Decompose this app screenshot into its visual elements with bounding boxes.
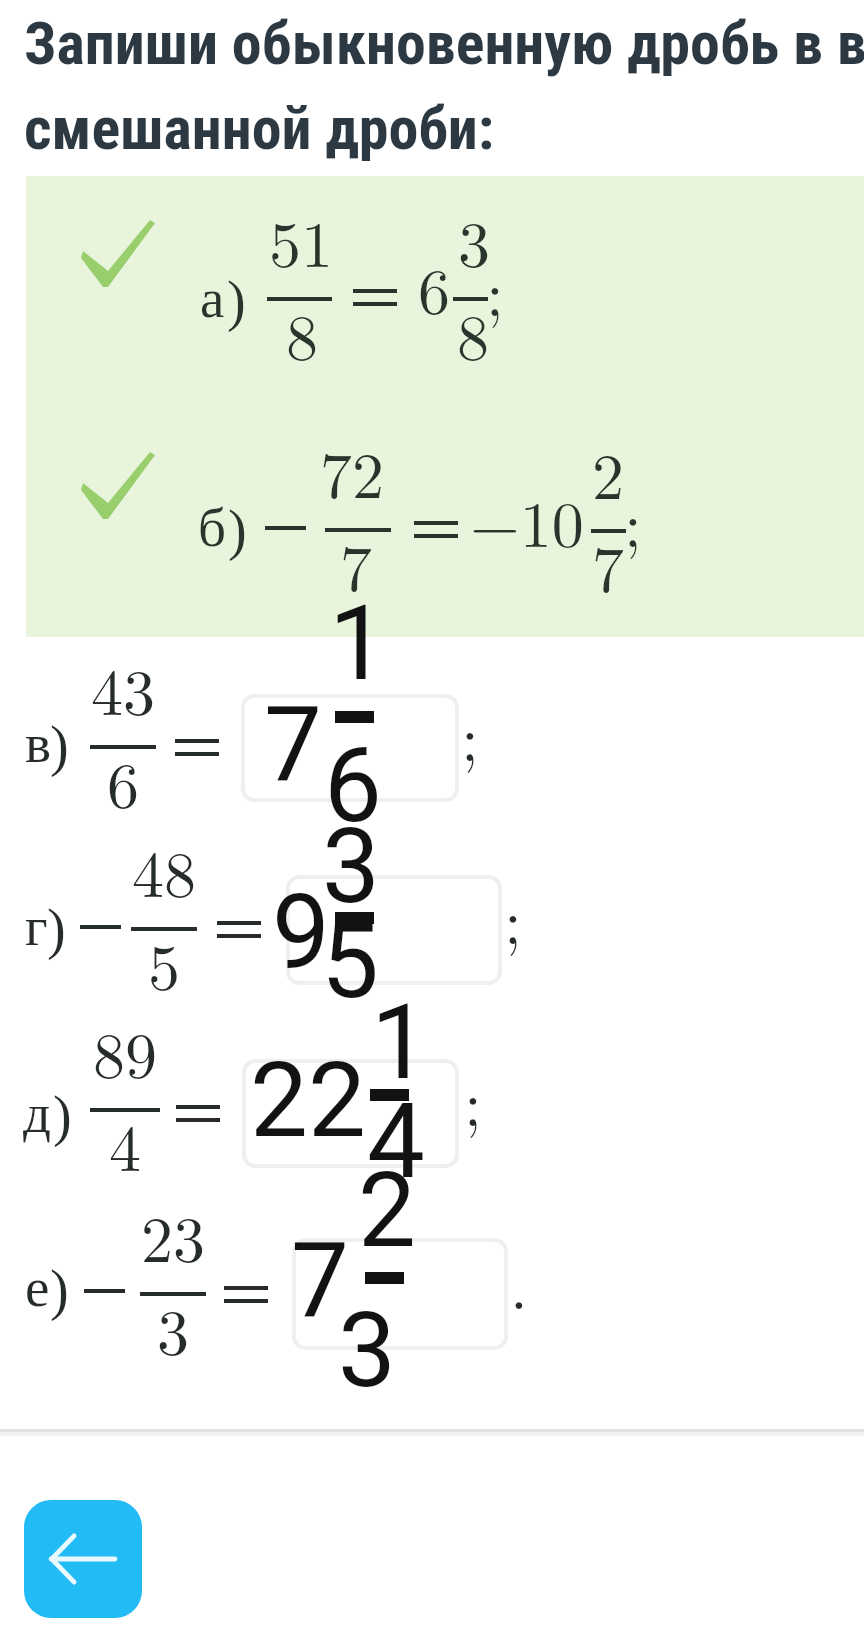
staticText: 3: [458, 195, 490, 286]
staticText: 23: [141, 1190, 205, 1281]
staticText: 6: [107, 736, 139, 827]
staticText: −10: [470, 475, 584, 566]
staticText: 2: [592, 427, 624, 518]
staticText: Запиши обыкновенную дробь в виде: [24, 8, 864, 78]
staticText: г: [25, 896, 48, 957]
staticText: 7: [264, 684, 322, 805]
staticText: .: [510, 1237, 528, 1328]
staticText: е: [25, 1257, 50, 1318]
staticText: д: [23, 1083, 51, 1144]
staticText: 6: [324, 725, 382, 846]
staticText: 48: [132, 825, 196, 916]
staticText: ;: [504, 872, 522, 963]
staticText: 3: [338, 1290, 396, 1411]
button[interactable]: Back: [24, 1500, 142, 1618]
button[interactable]: [241, 694, 459, 802]
staticText: ): [228, 499, 247, 561]
button[interactable]: [286, 875, 502, 985]
staticText: ): [47, 898, 66, 960]
staticText: 6: [418, 242, 450, 333]
staticText: 22: [250, 1040, 366, 1161]
staticText: 7: [291, 1220, 349, 1341]
staticText: ;: [464, 1054, 482, 1145]
staticText: 89: [93, 1006, 157, 1097]
staticText: ;: [624, 475, 642, 566]
staticText: 4: [109, 1099, 141, 1190]
staticText: 8: [286, 288, 318, 379]
staticText: a: [200, 268, 225, 329]
staticText: 5: [321, 901, 379, 1022]
staticText: б: [198, 497, 226, 558]
staticText: 3: [322, 806, 380, 927]
staticText: 7: [340, 519, 372, 610]
staticText: ): [227, 270, 246, 332]
staticText: 5: [148, 918, 180, 1009]
staticText: 2: [358, 1150, 416, 1271]
button[interactable]: [242, 1059, 459, 1168]
staticText: 43: [91, 643, 155, 734]
staticText: 3: [157, 1283, 189, 1374]
staticText: 4: [367, 1081, 425, 1202]
staticText: в: [25, 713, 51, 774]
staticText: 9: [272, 872, 330, 993]
staticText: ;: [486, 244, 504, 335]
staticText: 8: [457, 288, 489, 379]
staticText: 7: [592, 520, 624, 611]
staticText: ): [50, 1259, 69, 1321]
staticText: 72: [320, 426, 384, 517]
staticText: 1: [371, 982, 429, 1103]
staticText: ): [53, 1085, 72, 1147]
staticText: ;: [461, 689, 479, 780]
button[interactable]: [292, 1238, 508, 1350]
staticText: 1: [329, 583, 387, 704]
staticText: смешанной дроби:: [24, 93, 495, 163]
staticText: ): [50, 715, 69, 777]
staticText: 51: [269, 195, 333, 286]
